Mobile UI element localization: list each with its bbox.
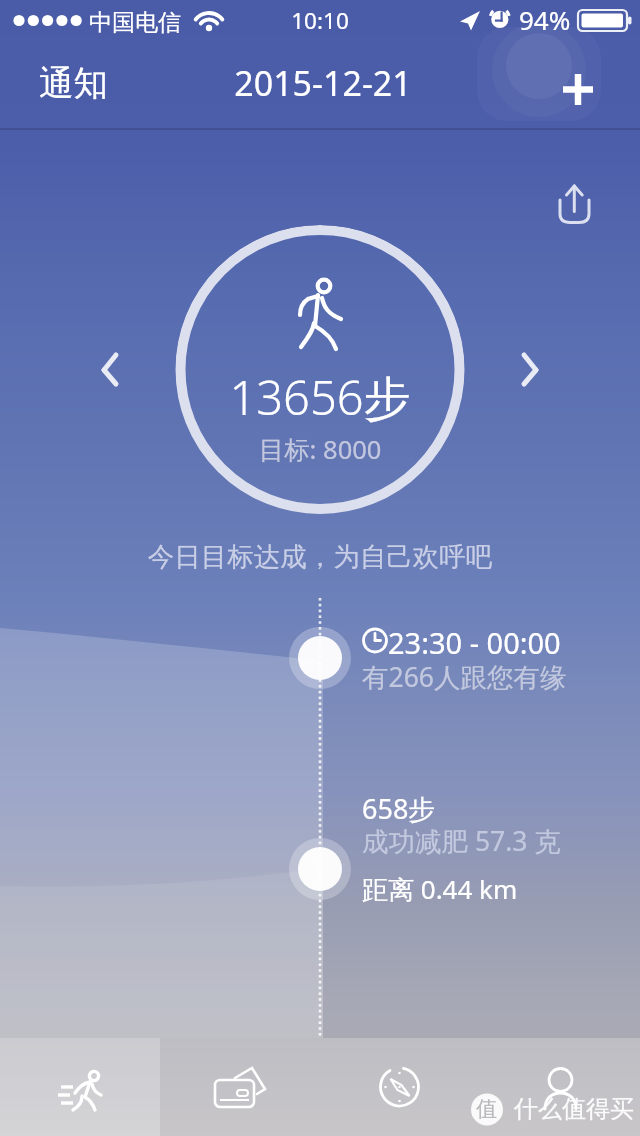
button[interactable]: Daily steps [175,225,465,515]
button[interactable]: Profile [480,1038,640,1136]
button[interactable]: 23:30 - 00:00 [388,623,561,662]
staticText: 成功减肥 57.3 克 [362,823,561,859]
staticText: 94% [519,2,571,37]
staticText: 值 [476,1096,497,1122]
button[interactable]: Discover [320,1038,480,1136]
staticText: 13656步 [175,365,465,429]
staticText: 有266人跟您有缘 [362,659,567,695]
button[interactable]: Activity [0,1038,160,1136]
staticText: 通知 [39,62,108,105]
button[interactable]: Next day [500,340,556,400]
button[interactable]: Wallet [160,1038,320,1136]
staticText: 什么值得买 [514,1094,634,1124]
staticText: 目标: 8000 [175,432,465,467]
button[interactable]: Previous day [84,340,140,400]
button[interactable]: Share [546,176,602,232]
staticText: 23:30 - 00:00 [388,623,561,662]
button[interactable]: Add [548,59,610,121]
staticText: 2015-12-21 [3,60,640,106]
staticText: 10:10 [0,5,640,36]
staticText: 今日目标达成，为自己欢呼吧 [0,540,640,573]
staticText: 距离 0.44 km [362,871,518,907]
staticText: 658步 [362,790,436,827]
button[interactable]: 通知 [39,62,108,105]
staticText: 中国电信 [89,8,181,37]
